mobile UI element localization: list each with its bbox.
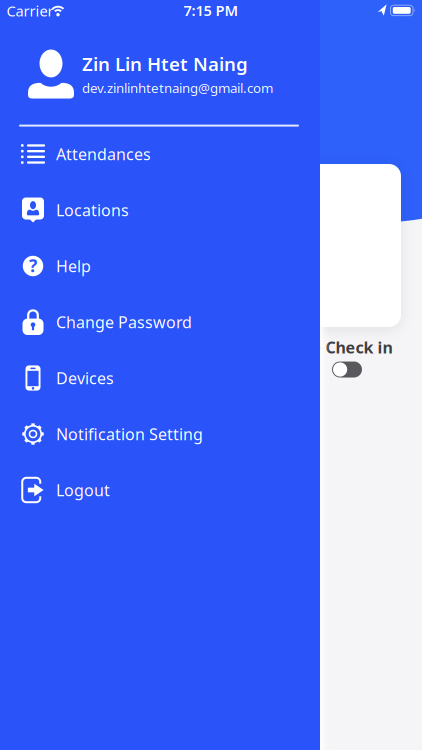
staticText: Attendances [56, 143, 151, 165]
staticText: Zin Lin Htet Naing [82, 51, 248, 76]
staticText: Logout [56, 479, 110, 501]
staticText: Help [56, 255, 91, 277]
button[interactable]: Change Password [0, 294, 320, 350]
button[interactable]: Zin Lin Htet Naing [0, 0, 320, 750]
button[interactable]: Notification Setting [0, 406, 320, 462]
button[interactable]: Locations [0, 182, 320, 238]
staticText: Devices [56, 367, 114, 389]
staticText: Office Check in [273, 337, 392, 358]
button[interactable]: Logout [0, 462, 320, 518]
button[interactable]: Devices [0, 350, 320, 406]
staticText: Carrier [6, 1, 53, 21]
staticText: 7:15 PM [183, 1, 238, 20]
staticText: Locations [56, 199, 129, 221]
staticText: Change Password [56, 311, 192, 333]
staticText: dev.zinlinhtetnaing@gmail.com [82, 79, 273, 97]
button[interactable]: Attendances [0, 126, 320, 182]
staticText: ? [29, 254, 37, 277]
button[interactable]: ? [0, 238, 320, 294]
staticText: Notification Setting [56, 423, 203, 445]
button[interactable]: Office Check in [332, 361, 362, 377]
